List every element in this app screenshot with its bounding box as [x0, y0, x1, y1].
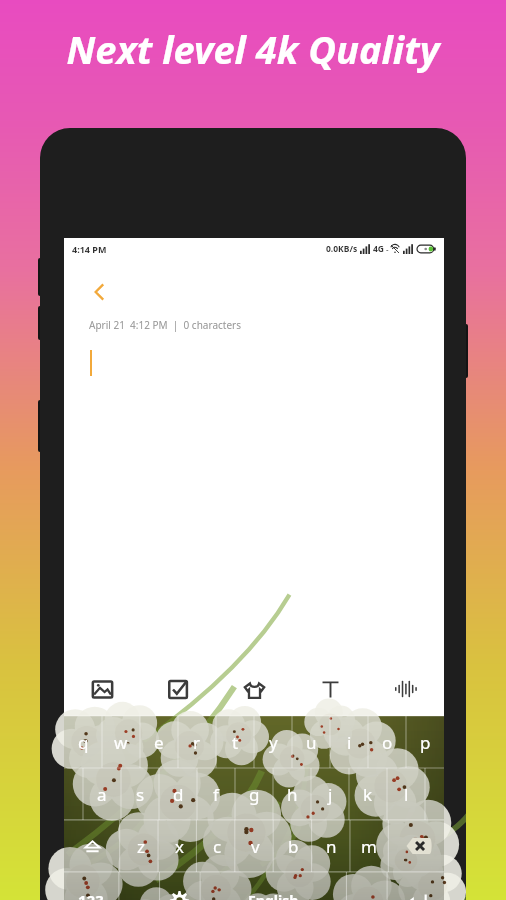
staticText: r: [193, 731, 201, 754]
staticText: h: [287, 783, 298, 806]
button[interactable]: t: [216, 716, 254, 768]
button[interactable]: w: [102, 716, 140, 768]
staticText: -: [386, 244, 389, 255]
button[interactable]: Insert image: [64, 662, 140, 716]
button[interactable]: Enter: [387, 872, 444, 900]
staticText: b: [288, 835, 299, 858]
button[interactable]: z: [121, 820, 160, 872]
button[interactable]: s: [121, 768, 159, 820]
staticText: x: [175, 835, 184, 858]
staticText: 4:14 PM: [72, 243, 107, 255]
button[interactable]: Shift: [64, 820, 121, 872]
staticText: z: [137, 835, 145, 858]
button[interactable]: r: [178, 716, 216, 768]
button[interactable]: m: [350, 820, 388, 872]
staticText: q: [78, 731, 89, 754]
button[interactable]: Voice note: [368, 662, 444, 716]
button[interactable]: Back: [86, 278, 114, 306]
button[interactable]: v: [236, 820, 274, 872]
button[interactable]: h: [273, 768, 311, 820]
staticText: s: [136, 783, 145, 806]
staticText: a: [97, 783, 107, 806]
staticText: u: [306, 731, 317, 754]
button[interactable]: y: [254, 716, 292, 768]
button[interactable]: b: [274, 820, 312, 872]
button[interactable]: k: [349, 768, 387, 820]
button[interactable]: Theme: [216, 662, 292, 716]
staticText: c: [213, 835, 222, 858]
staticText: v: [251, 835, 260, 858]
staticText: Next level 4k Quality: [66, 23, 440, 75]
button[interactable]: Backspace: [388, 820, 444, 872]
button[interactable]: u: [292, 716, 330, 768]
staticText: w: [114, 731, 128, 754]
button[interactable]: g: [235, 768, 273, 820]
staticText: j: [328, 783, 333, 806]
staticText: 0.0KB/s: [326, 243, 358, 255]
button[interactable]: p: [406, 716, 444, 768]
staticText: ,: [136, 895, 141, 900]
staticText: p: [420, 731, 431, 754]
staticText: o: [382, 731, 393, 754]
staticText: g: [249, 783, 260, 806]
button[interactable]: d: [159, 768, 197, 820]
staticText: t: [232, 731, 239, 754]
staticText: f: [213, 783, 219, 806]
button[interactable]: o: [368, 716, 406, 768]
staticText: April 21 4:12 PM | 0 characters: [89, 318, 241, 332]
staticText: l: [404, 783, 409, 806]
button[interactable]: a: [83, 768, 121, 820]
staticText: k: [363, 783, 373, 806]
button[interactable]: Settings: [159, 872, 200, 900]
button[interactable]: Text format: [292, 662, 368, 716]
button[interactable]: n: [312, 820, 350, 872]
button[interactable]: Numbers: [64, 872, 118, 900]
staticText: m: [361, 835, 377, 858]
staticText: i: [347, 731, 352, 754]
button[interactable]: j: [311, 768, 349, 820]
button[interactable]: f: [197, 768, 235, 820]
staticText: e: [154, 731, 164, 754]
button[interactable]: Space — English: [200, 872, 346, 900]
button[interactable]: l: [387, 768, 425, 820]
button[interactable]: Checklist: [140, 662, 216, 716]
staticText: 4G: [373, 243, 385, 255]
staticText: n: [326, 835, 337, 858]
button[interactable]: e: [140, 716, 178, 768]
button[interactable]: Comma: [118, 872, 159, 900]
staticText: English: [248, 891, 299, 900]
button[interactable]: q: [64, 716, 102, 768]
button[interactable]: c: [198, 820, 236, 872]
button[interactable]: i: [330, 716, 368, 768]
staticText: d: [173, 783, 184, 806]
staticText: 123: [78, 890, 104, 900]
button[interactable]: x: [160, 820, 198, 872]
staticText: y: [269, 731, 278, 754]
button[interactable]: Period: [346, 872, 387, 900]
